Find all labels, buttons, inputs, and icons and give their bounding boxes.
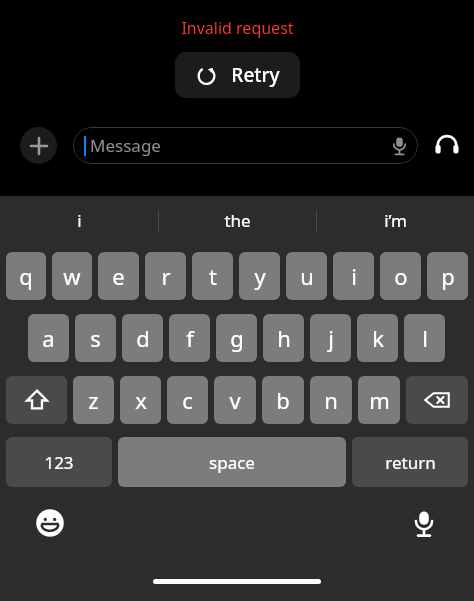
button[interactable]: d [122,314,163,362]
staticText: q [19,261,33,291]
staticText: j [328,323,334,353]
button[interactable]: Shift [6,376,67,424]
button[interactable]: t [192,252,233,300]
button[interactable]: the [159,196,316,245]
staticText: w [63,261,81,291]
button[interactable]: i [0,196,158,245]
button[interactable]: Retry [175,52,300,98]
staticText: n [324,385,338,415]
button[interactable]: 123 [6,437,112,487]
staticText: space [209,451,255,474]
button[interactable]: g [216,314,257,362]
staticText: x [135,385,147,415]
button[interactable]: w [52,252,92,300]
button[interactable]: q [6,252,46,300]
button[interactable]: n [310,376,352,424]
button[interactable]: f [169,314,210,362]
button[interactable]: Voice input [404,503,444,543]
staticText: o [394,261,408,291]
button[interactable]: l [404,314,445,362]
button[interactable]: Add attachment [20,127,57,164]
staticText: d [136,323,150,353]
staticText: e [112,261,125,291]
button[interactable]: Message [73,127,418,164]
button[interactable]: m [358,376,400,424]
button[interactable]: Backspace [406,376,468,424]
staticText: r [161,261,171,291]
staticText: s [90,323,101,353]
staticText: a [42,323,55,353]
staticText: p [441,261,455,291]
button[interactable]: j [310,314,351,362]
staticText: i [351,261,357,291]
button[interactable]: h [263,314,304,362]
button[interactable]: o [380,252,421,300]
button[interactable]: space [118,437,346,487]
button[interactable]: v [214,376,256,424]
button[interactable]: return [352,437,468,487]
button[interactable]: y [239,252,280,300]
button[interactable]: s [75,314,116,362]
staticText: u [300,261,314,291]
staticText: c [182,385,193,415]
button[interactable]: x [120,376,161,424]
staticText: return [385,451,436,474]
button[interactable]: Emoji [30,503,70,543]
button[interactable]: i [333,252,374,300]
button[interactable]: i’m [317,196,474,245]
staticText: i’m [384,209,407,232]
staticText: v [229,385,241,415]
staticText: 123 [44,451,74,474]
button[interactable]: b [262,376,304,424]
button[interactable]: z [73,376,114,424]
staticText: m [369,385,390,415]
other: Dictate message [389,135,410,156]
button[interactable]: r [145,252,186,300]
button[interactable]: a [28,314,69,362]
staticText: Message [90,134,161,157]
staticText: the [224,209,251,232]
staticText: b [276,385,290,415]
staticText: h [277,323,291,353]
button[interactable]: k [357,314,398,362]
button[interactable]: u [286,252,327,300]
staticText: t [209,261,217,291]
staticText: Retry [231,62,280,88]
staticText: g [230,323,244,353]
staticText: k [372,323,384,353]
button[interactable]: e [98,252,139,300]
staticText: i [77,209,82,232]
button[interactable]: p [427,252,468,300]
staticText: z [88,385,99,415]
button[interactable]: c [167,376,208,424]
staticText: f [186,323,194,353]
staticText: y [254,261,266,291]
button[interactable]: Audio [430,128,464,162]
staticText: l [422,323,428,353]
staticText: Invalid request [181,17,294,39]
